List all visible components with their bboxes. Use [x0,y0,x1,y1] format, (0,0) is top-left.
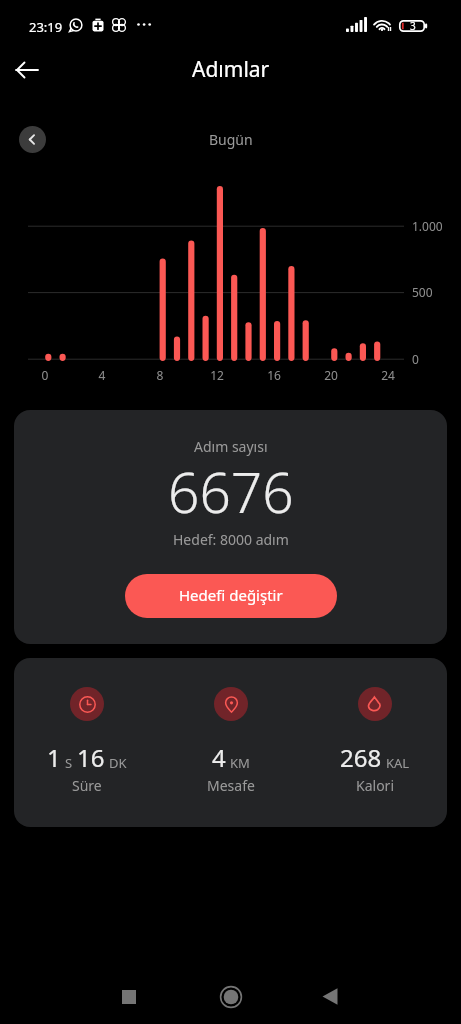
staticText: Hedef: 8000 adım [173,530,289,549]
staticText: Süre [72,776,102,795]
staticText: S [65,754,73,772]
staticText: 6676 [168,454,294,529]
staticText: Hedefi değiştir [179,585,283,605]
staticText: 4 [212,741,226,774]
staticText: DK [109,754,127,772]
button[interactable]: 268 [303,658,447,827]
staticText: 12 [203,367,231,383]
button[interactable]: 4 [159,658,303,827]
staticText: KAL [386,754,410,772]
staticText: Kalori [356,776,394,795]
staticText: Mesafe [207,776,255,795]
staticText: Bugün [209,130,253,149]
staticText: 23:19 [29,18,63,36]
button[interactable]: Home [180,969,282,1024]
staticText: 500 [412,284,433,300]
staticText: 16 [77,741,105,774]
staticText: 4 [88,367,116,383]
staticText: 1 [47,741,61,774]
staticText: 16 [260,367,288,383]
button[interactable]: Back [5,48,49,92]
staticText: 24 [374,367,402,383]
staticText: 3 [410,19,416,33]
staticText: 1.000 [412,218,443,234]
staticText: 268 [340,741,382,774]
staticText: Adımlar [192,55,270,84]
staticText: KM [230,754,250,772]
button[interactable]: 1 [14,658,159,827]
button[interactable]: Previous day [19,126,46,153]
staticText: 20 [317,367,345,383]
staticText: Adım sayısı [194,437,268,456]
staticText: 8 [146,367,174,383]
staticText: 0 [412,351,419,367]
staticText: 0 [31,367,59,383]
button[interactable]: Back [280,969,382,1024]
button[interactable]: Recent apps [78,969,180,1024]
button[interactable]: Hedefi değiştir [125,574,337,618]
